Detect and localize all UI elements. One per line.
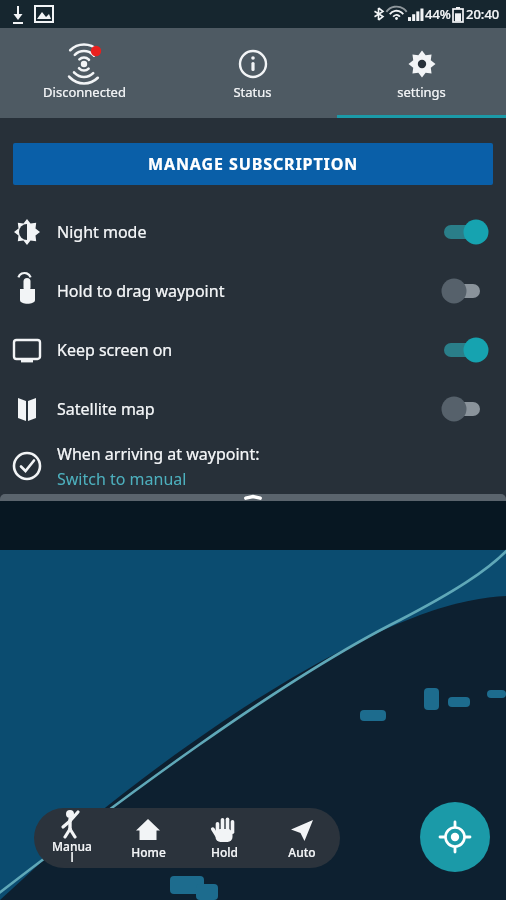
staticText: Night mode [57,221,147,243]
button[interactable]: Auto [263,808,340,868]
button[interactable]: Night mode [0,202,506,261]
button[interactable]: Status [168,28,337,118]
staticText: 20:40 [466,5,500,23]
staticText: Disconnected [43,83,126,101]
staticText: Hold to drag waypoint [57,280,225,302]
staticText: Manua l [52,838,92,866]
staticText: settings [397,83,446,101]
staticText: 44% [425,5,451,23]
button[interactable]: Collapse settings [0,494,506,501]
button[interactable]: Manua l [34,808,110,868]
staticText: Switch to manual [57,468,187,490]
staticText: Satellite map [57,398,155,420]
staticText: Home [131,844,166,860]
button[interactable]: When arriving at waypoint: [0,438,506,494]
staticText: Auto [288,844,316,860]
staticText: MANAGE SUBSCRIPTION [148,153,359,175]
button[interactable]: settings [337,28,506,118]
button[interactable]: Hold to drag waypoint [0,261,506,320]
button[interactable]: Hold [186,808,263,868]
button[interactable]: My location [420,802,490,872]
button[interactable]: Home [110,808,186,868]
button[interactable]: MANAGE SUBSCRIPTION [13,143,493,185]
staticText: When arriving at waypoint: [57,443,260,465]
staticText: Status [233,83,272,101]
staticText: Keep screen on [57,339,173,361]
button[interactable]: Disconnected [0,28,168,118]
button[interactable]: Keep screen on [0,320,506,379]
staticText: Hold [211,844,238,860]
button[interactable]: Satellite map [0,379,506,438]
